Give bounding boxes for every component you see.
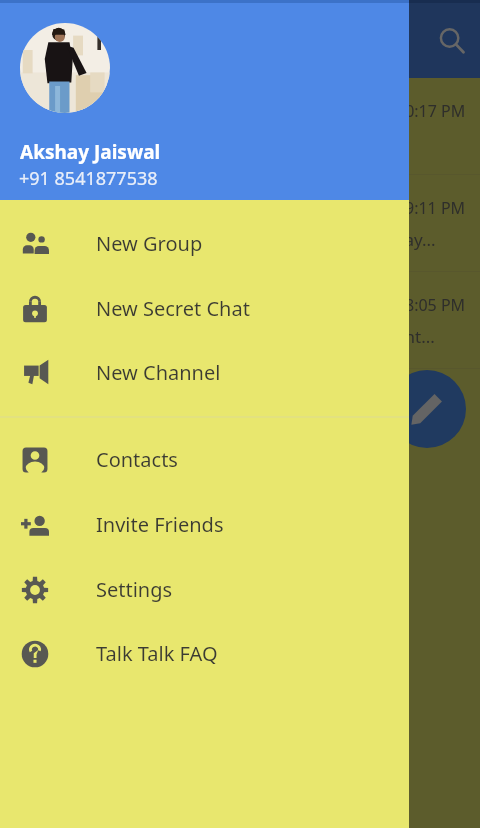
staticText: Rahul Kumar (86, 197, 405, 222)
button[interactable]: Talk Talk FAQ (0, 621, 409, 686)
button[interactable]: Contacts (0, 427, 409, 492)
staticText: 10:17 PM (396, 100, 466, 122)
staticText: Hello, good morning (86, 131, 252, 154)
button[interactable]: New Channel (0, 340, 409, 405)
staticText: Settings (96, 576, 173, 603)
button[interactable]: Office Group (0, 272, 480, 369)
staticText: 8:05 PM (405, 294, 466, 316)
staticText: Talk Talk FAQ (96, 640, 218, 667)
button[interactable]: New message (388, 370, 466, 448)
staticText: Akshay Jaiswal (20, 139, 161, 165)
button[interactable]: Rahul Kumar (0, 175, 480, 272)
staticText: Sunita Jaiswal (86, 100, 396, 125)
staticText: Invite Friends (96, 511, 224, 538)
staticText: Ok then, see you tomorrow, bye bye today… (86, 228, 436, 251)
button[interactable]: Search (428, 17, 476, 65)
staticText: New Channel (96, 359, 221, 386)
staticText: Please review the new mail and document.… (86, 325, 435, 348)
button[interactable]: Invite Friends (0, 492, 409, 557)
staticText: +91 8541877538 (19, 166, 158, 191)
button[interactable]: Sunita Jaiswal (0, 78, 480, 175)
button[interactable]: New Group (0, 211, 409, 276)
button[interactable]: Settings (0, 557, 409, 622)
staticText: New Secret Chat (96, 295, 250, 322)
staticText: 9:11 PM (405, 197, 466, 219)
staticText: Office Group (86, 294, 405, 319)
button[interactable]: New Secret Chat (0, 276, 409, 341)
staticText: Contacts (96, 446, 178, 473)
staticText: New Group (96, 230, 203, 257)
